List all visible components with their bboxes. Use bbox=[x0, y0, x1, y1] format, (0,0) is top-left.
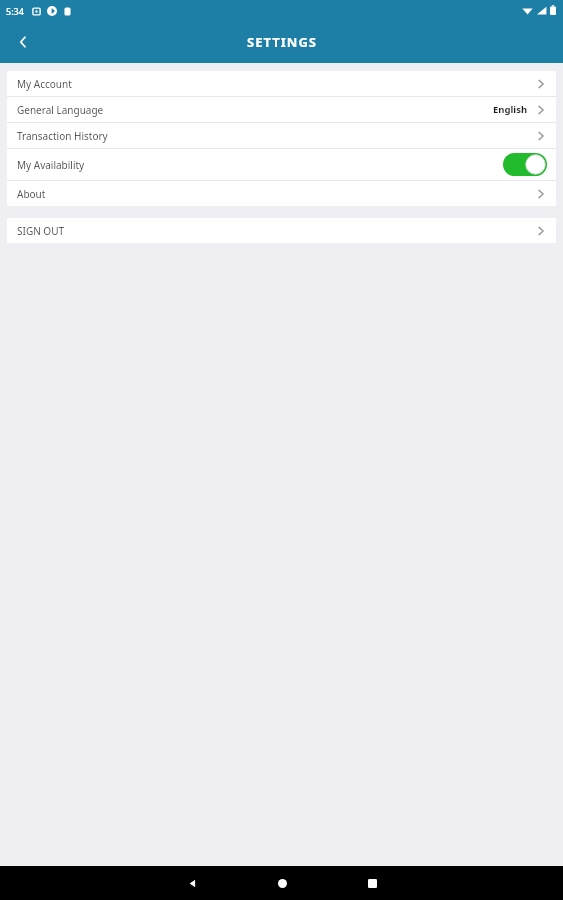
staticText: 5:34 bbox=[6, 5, 24, 17]
staticText: Transaction History bbox=[17, 129, 535, 143]
button[interactable]: General Language bbox=[7, 97, 556, 122]
button[interactable]: Home bbox=[259, 866, 305, 900]
button[interactable]: Back bbox=[169, 866, 215, 900]
button[interactable]: Back bbox=[0, 21, 46, 63]
button[interactable]: My Availability toggle bbox=[503, 153, 547, 176]
button[interactable]: Transaction History bbox=[7, 123, 556, 148]
staticText: About bbox=[17, 187, 535, 201]
staticText: General Language bbox=[17, 103, 493, 117]
staticText: English bbox=[493, 103, 528, 116]
button[interactable]: My Account bbox=[7, 71, 556, 96]
staticText: My Availability bbox=[17, 158, 503, 172]
staticText: SIGN OUT bbox=[17, 224, 535, 238]
staticText: SETTINGS bbox=[247, 33, 317, 51]
button[interactable]: My Availability bbox=[7, 149, 556, 180]
button[interactable]: About bbox=[7, 181, 556, 206]
button[interactable]: Recent apps bbox=[349, 866, 395, 900]
staticText: My Account bbox=[17, 77, 535, 91]
button[interactable]: SIGN OUT bbox=[7, 218, 556, 243]
